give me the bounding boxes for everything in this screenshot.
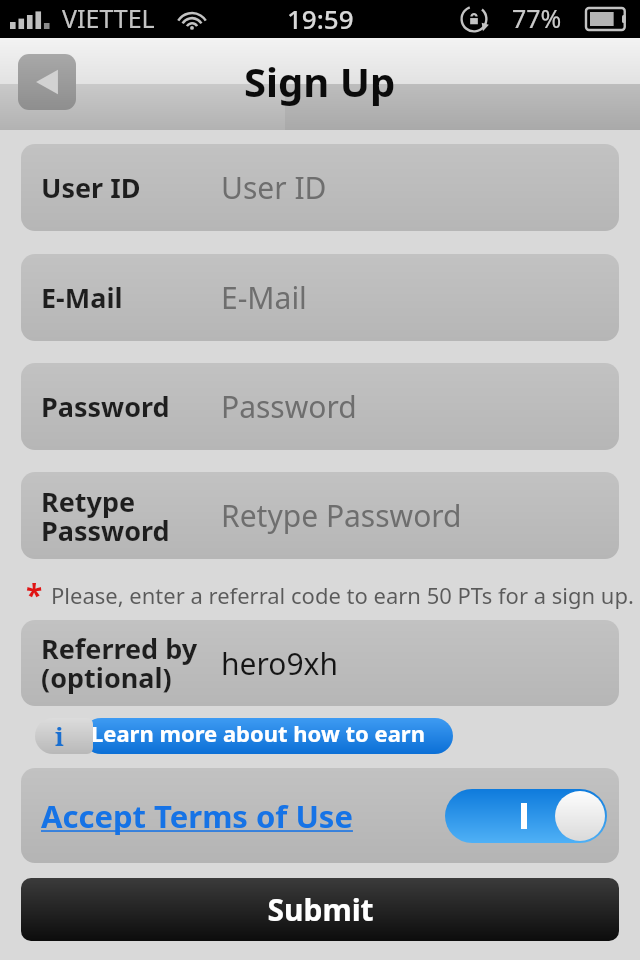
- staticText: *: [26, 574, 43, 615]
- button[interactable]: Learn more about how to earn PTs faster.: [35, 718, 453, 754]
- button[interactable]: E-Mail: [21, 254, 619, 341]
- staticText: Please, enter a referral code to earn 50…: [51, 580, 634, 610]
- staticText: Password: [221, 386, 357, 427]
- staticText: 19:59: [287, 1, 354, 36]
- button[interactable]: Accept Terms of Use toggle: [445, 789, 607, 843]
- staticText: Learn more about how to earn PTs faster.: [91, 718, 453, 754]
- button[interactable]: Retype Password: [21, 472, 619, 559]
- staticText: Retype Password: [41, 483, 170, 549]
- staticText: Password: [41, 388, 170, 425]
- staticText: Accept Terms of Use: [41, 795, 353, 837]
- staticText: i: [55, 719, 64, 753]
- staticText: User ID: [221, 167, 327, 208]
- button[interactable]: Referred by (optional): [21, 620, 619, 706]
- staticText: 77%: [512, 1, 562, 35]
- staticText: Sign Up: [244, 54, 396, 108]
- button[interactable]: Submit: [21, 878, 619, 941]
- button[interactable]: User ID: [21, 144, 619, 231]
- staticText: Retype Password: [221, 495, 462, 536]
- button[interactable]: Accept Terms of Use: [21, 768, 619, 863]
- staticText: VIETTEL: [62, 1, 155, 35]
- button[interactable]: Password: [21, 363, 619, 450]
- staticText: Referred by (optional): [41, 630, 198, 696]
- staticText: hero9xh: [221, 643, 338, 684]
- button[interactable]: Back: [18, 54, 76, 110]
- staticText: User ID: [41, 169, 141, 206]
- staticText: Submit: [267, 889, 374, 930]
- staticText: E-Mail: [41, 279, 123, 316]
- staticText: E-Mail: [221, 277, 307, 318]
